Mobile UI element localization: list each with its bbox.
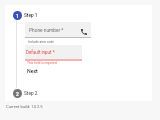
staticText: 1 <box>16 13 19 19</box>
staticText: Step 1 <box>24 13 38 19</box>
staticText: 2 <box>16 91 19 97</box>
button[interactable]: 2 <box>13 89 22 98</box>
button[interactable]: Phone number * <box>25 22 91 38</box>
button[interactable]: Next <box>25 67 40 75</box>
other: Call <box>78 26 90 38</box>
staticText: Step 2 <box>24 91 38 97</box>
staticText: Default input * <box>26 50 55 55</box>
staticText: This field is required <box>27 61 57 65</box>
staticText: Include area code <box>28 40 54 44</box>
staticText: Current build: 14.2.5 <box>6 104 43 109</box>
button[interactable]: 1 <box>13 11 22 20</box>
staticText: Phone number * <box>29 28 64 34</box>
staticText: Next <box>27 68 38 74</box>
button[interactable]: Default input * <box>25 45 82 61</box>
